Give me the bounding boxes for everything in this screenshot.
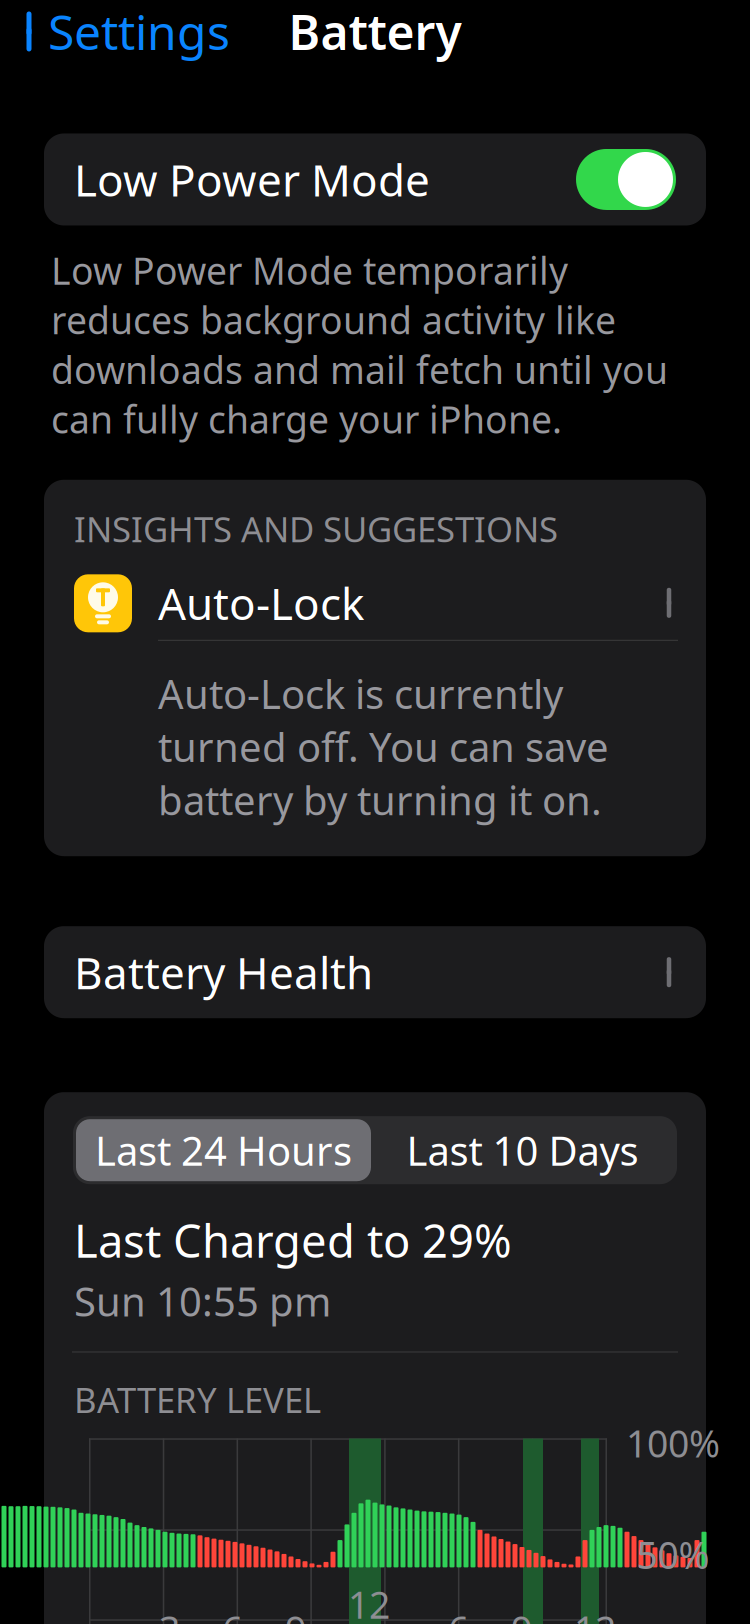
staticText: Auto-Lock is currently turned off. You c… xyxy=(158,667,609,826)
staticText: 12 xyxy=(574,1604,616,1624)
staticText: BATTERY LEVEL xyxy=(74,1376,321,1422)
button[interactable]: Last 24 Hours xyxy=(76,1119,371,1181)
staticText: 3 xyxy=(159,1604,180,1624)
staticText: Sun 10:55 pm xyxy=(74,1274,331,1327)
staticText: Battery xyxy=(288,0,461,63)
button[interactable]: Last 10 Days xyxy=(371,1119,674,1181)
button[interactable]: Auto-Lock xyxy=(44,552,706,641)
staticText: 6 xyxy=(222,1604,243,1624)
staticText: 50% xyxy=(636,1530,709,1579)
staticText: Low Power Mode temporarily reduces backg… xyxy=(51,245,668,444)
button[interactable]: Settings xyxy=(0,0,230,73)
staticText: Last 24 Hours xyxy=(95,1124,352,1177)
staticText: Battery Health xyxy=(74,943,373,1001)
staticText: 9 xyxy=(511,1604,532,1624)
staticText: Last Charged to 29% xyxy=(74,1210,512,1270)
staticText: Auto-Lock xyxy=(158,574,364,632)
button[interactable]: Battery Health xyxy=(44,926,706,1018)
staticText: INSIGHTS AND SUGGESTIONS xyxy=(74,506,558,552)
staticText: 100% xyxy=(626,1418,720,1468)
staticText: Settings xyxy=(48,0,230,63)
staticText: 9 xyxy=(285,1604,306,1624)
staticText: 6 xyxy=(448,1604,469,1624)
staticText: Low Power Mode xyxy=(74,150,430,209)
staticText: Last 10 Days xyxy=(406,1124,638,1177)
staticText: 12 pm xyxy=(348,1579,406,1624)
button[interactable]: Low Power Mode xyxy=(44,133,706,225)
